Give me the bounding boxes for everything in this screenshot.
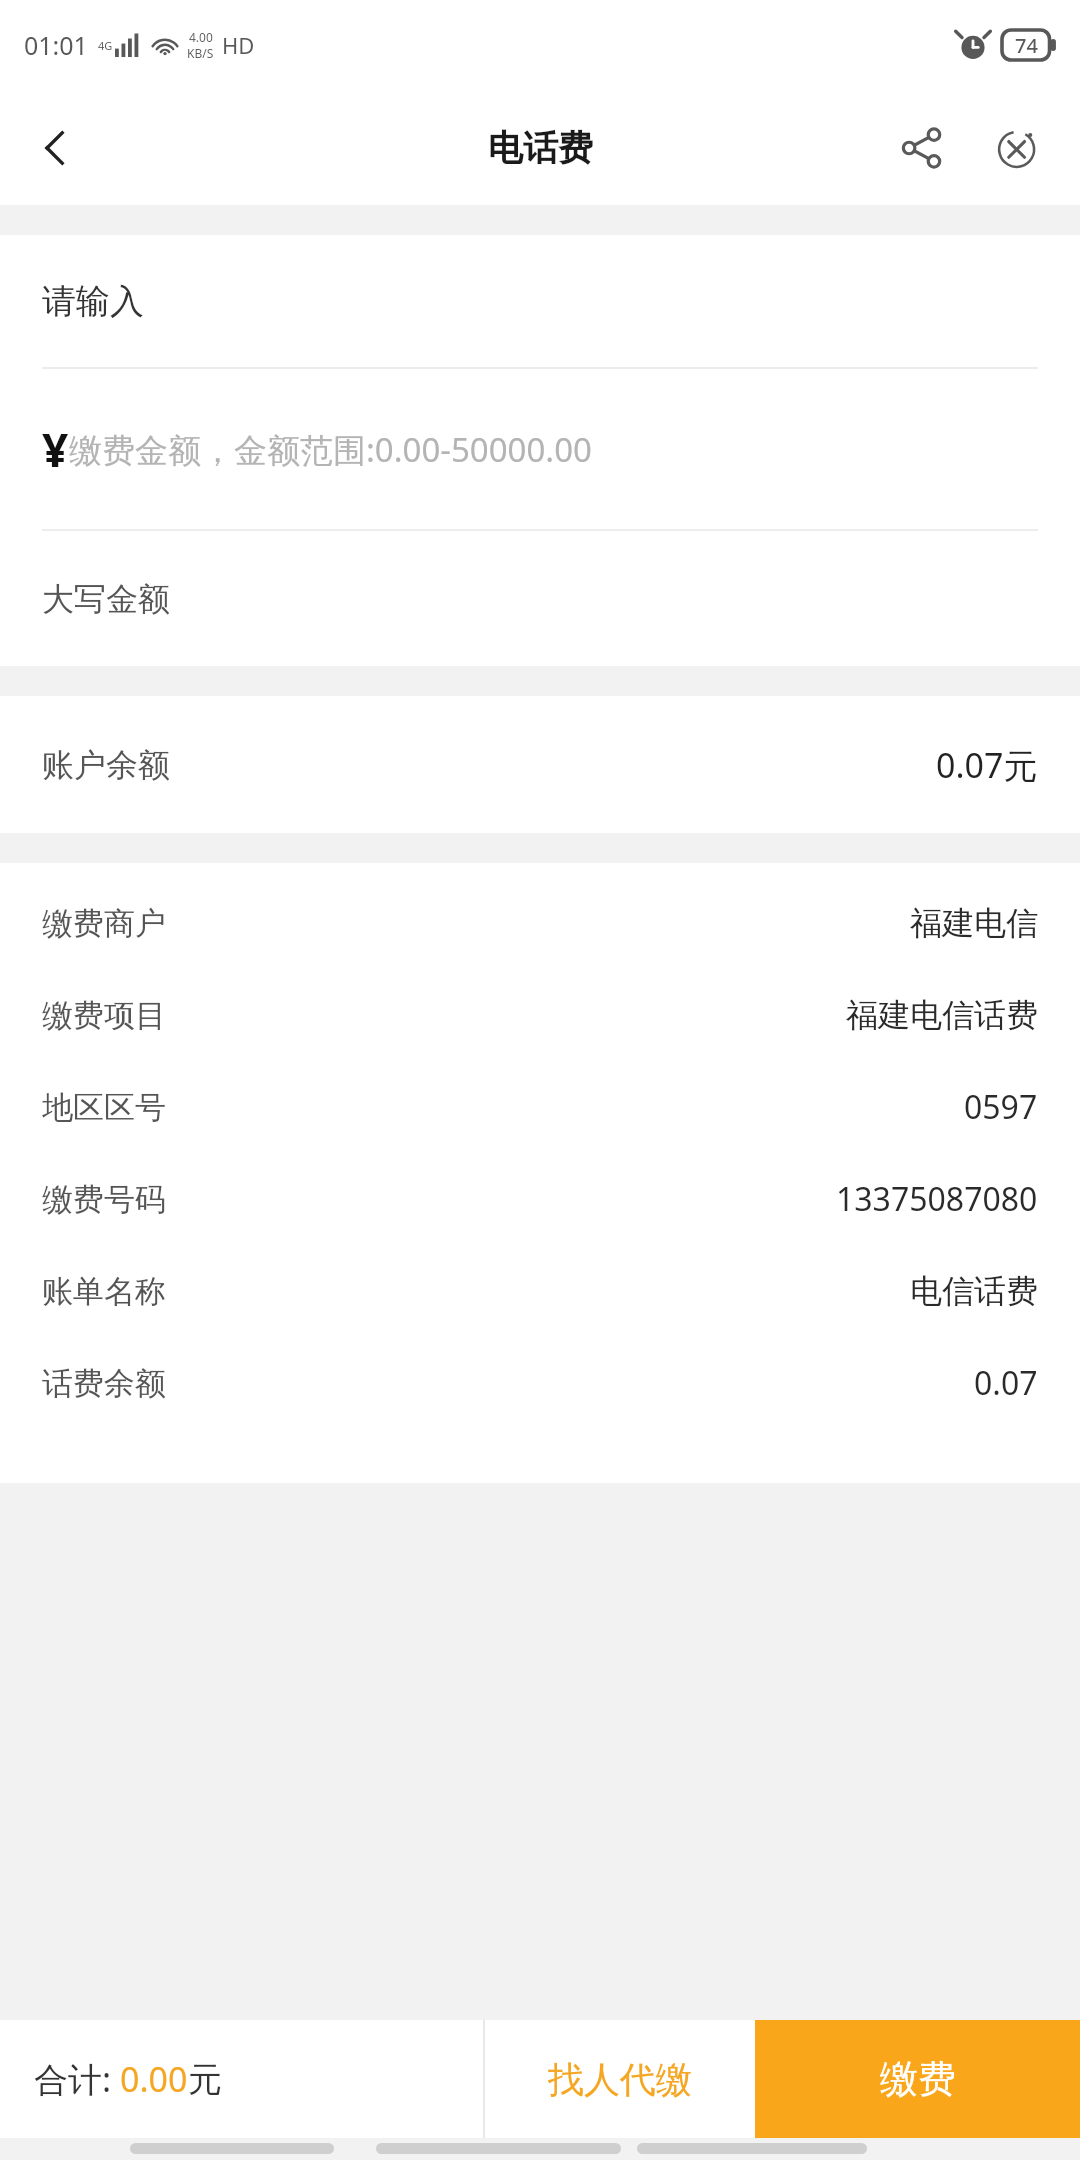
button[interactable]: 合计: <box>0 2020 483 2138</box>
staticText: 4.00 <box>189 29 213 45</box>
staticText: 大写金额 <box>42 579 170 619</box>
staticText: 0.00 <box>120 2056 188 2102</box>
button[interactable]: 地区区号 <box>0 1061 1080 1153</box>
staticText: 4G <box>98 38 113 53</box>
staticText: 找人代缴 <box>548 2057 692 2102</box>
staticText: 账单名称 <box>42 1272 166 1311</box>
staticText: 缴费 <box>880 2055 956 2103</box>
staticText: 缴费金额，金额范围:0.00-50000.00 <box>69 427 592 472</box>
staticText: 元 <box>188 2058 222 2101</box>
staticText: 话费余额 <box>42 1364 166 1403</box>
staticText: 福建电信 <box>910 903 1038 943</box>
button[interactable]: 请输入 <box>0 235 1080 367</box>
button[interactable]: 找人代缴 <box>485 2020 755 2138</box>
button[interactable]: ¥ <box>0 369 1080 529</box>
button[interactable]: 缴费商户 <box>0 877 1080 969</box>
staticText: 0597 <box>964 1085 1038 1129</box>
button[interactable]: 缴费项目 <box>0 969 1080 1061</box>
button[interactable]: Close <box>970 100 1066 196</box>
staticText: 账户余额 <box>42 745 170 785</box>
staticText: KB/S <box>187 45 214 61</box>
button[interactable]: 账户余额 <box>0 696 1080 833</box>
staticText: HD <box>222 30 255 60</box>
staticText: 13375087080 <box>836 1177 1038 1221</box>
button[interactable]: 缴费 <box>755 2020 1080 2138</box>
staticText: 地区区号 <box>42 1088 166 1127</box>
button[interactable]: 大写金额 <box>0 531 1080 666</box>
staticText: 电信话费 <box>910 1271 1038 1311</box>
button[interactable]: 缴费号码 <box>0 1153 1080 1245</box>
staticText: 请输入 <box>42 280 144 323</box>
staticText: 缴费号码 <box>42 1180 166 1219</box>
staticText: 缴费项目 <box>42 996 166 1035</box>
staticText: 福建电信话费 <box>846 995 1038 1035</box>
button[interactable]: Share <box>874 100 970 196</box>
button[interactable]: 账单名称 <box>0 1245 1080 1337</box>
staticText: 74 <box>1015 32 1038 59</box>
staticText: 0.07 <box>974 1361 1038 1405</box>
button[interactable]: 话费余额 <box>0 1337 1080 1429</box>
staticText: ¥ <box>42 418 69 481</box>
staticText: 合计: <box>34 2056 120 2102</box>
staticText: 缴费商户 <box>42 904 166 943</box>
staticText: 01:01 <box>24 28 88 62</box>
staticText: 电话费 <box>488 126 593 170</box>
button[interactable]: Back <box>0 93 110 203</box>
staticText: 0.07元 <box>936 742 1038 788</box>
